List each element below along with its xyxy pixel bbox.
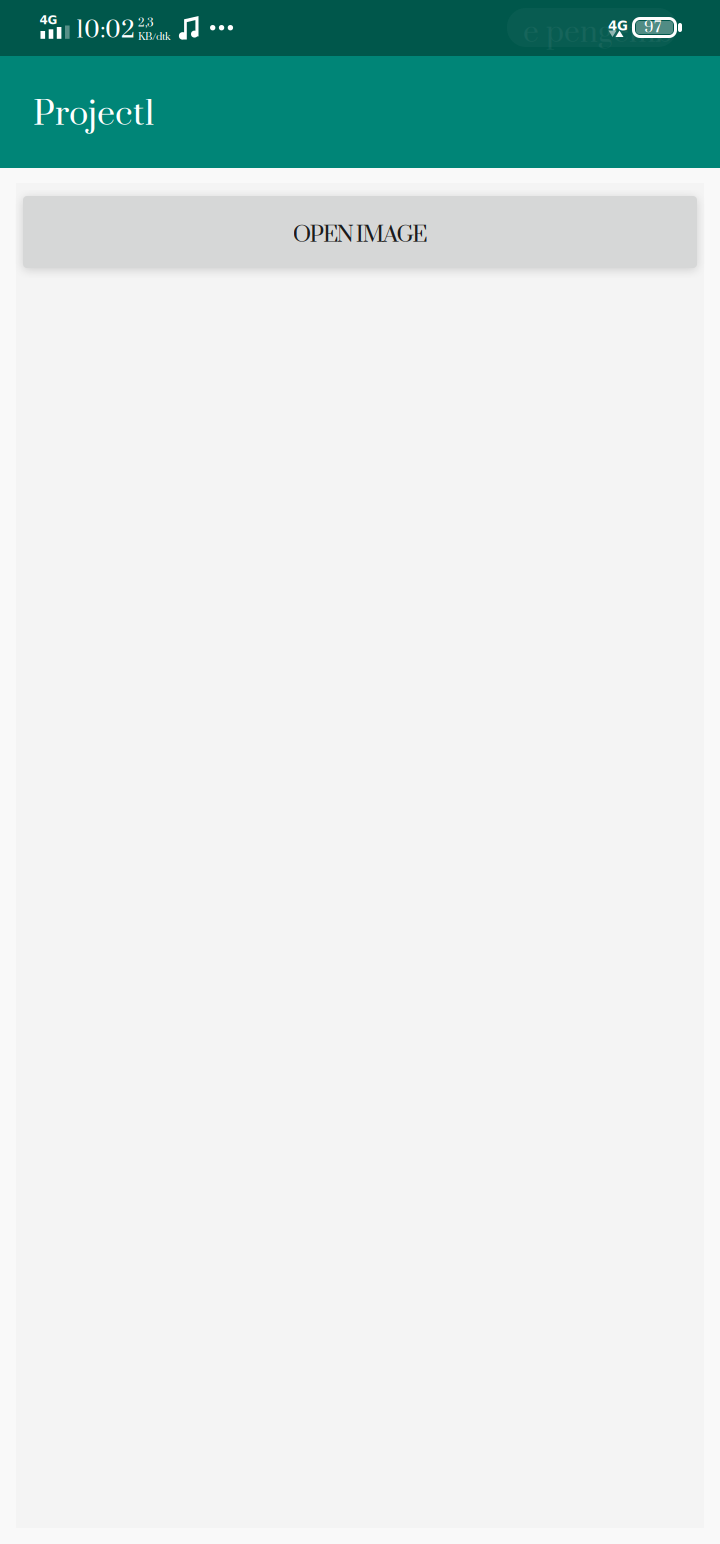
staticText: 4G [39, 13, 57, 27]
staticText: 97 [644, 18, 661, 37]
button[interactable]: OPEN IMAGE [23, 196, 697, 268]
staticText: 4G [608, 18, 628, 33]
staticText: OPEN IMAGE [293, 220, 427, 249]
staticText: 10:02 [76, 15, 135, 46]
staticText: KB/dtk [138, 30, 171, 43]
staticText: e pengemb [523, 14, 673, 52]
staticText: 2,3 [138, 16, 154, 30]
staticText: Project1 [33, 93, 155, 136]
